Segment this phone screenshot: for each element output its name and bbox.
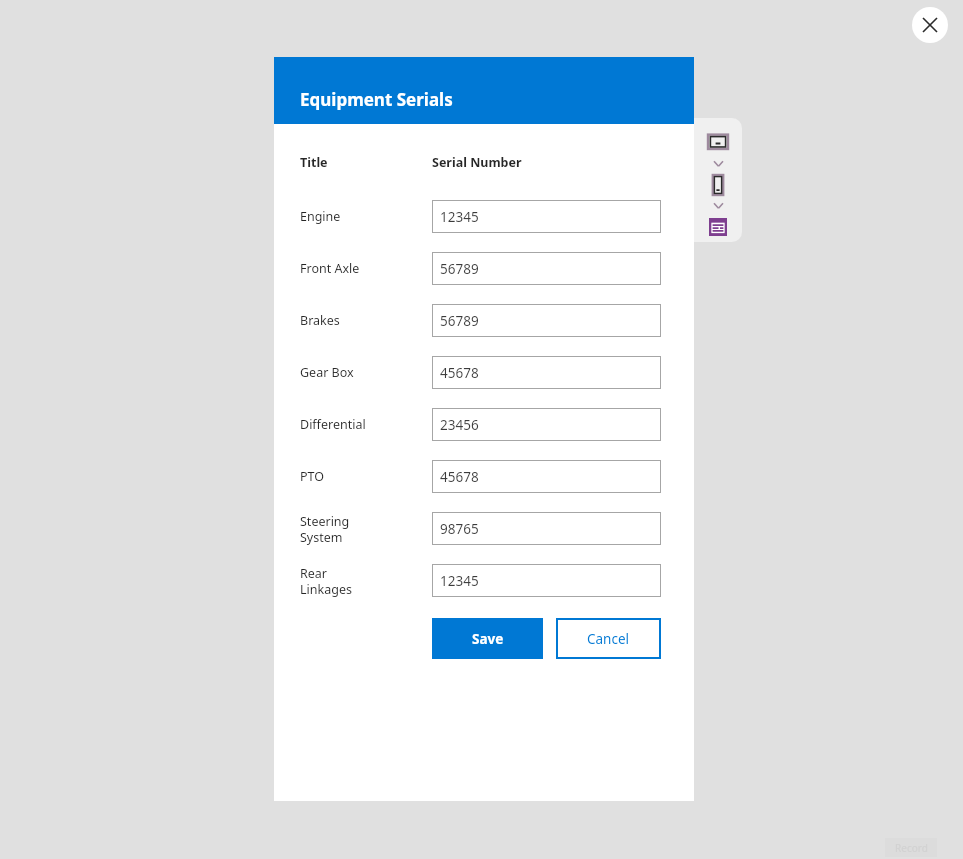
staticText: Gear Box [300, 364, 354, 381]
button[interactable]: 56789 [432, 252, 661, 285]
staticText: Engine [300, 208, 341, 225]
staticText: Differential [300, 416, 366, 433]
staticText: Rear Linkages [300, 565, 352, 597]
button[interactable]: Cancel [556, 618, 661, 659]
staticText: Record [895, 841, 928, 855]
button[interactable]: 12345 [432, 564, 661, 597]
button[interactable]: Phone view [705, 172, 731, 198]
staticText: PTO [300, 468, 325, 485]
staticText: Front Axle [300, 260, 360, 277]
button[interactable]: More desktop options [711, 156, 725, 170]
staticText: 12345 [440, 208, 479, 226]
button[interactable]: 56789 [432, 304, 661, 337]
button[interactable]: Desktop view [705, 130, 731, 156]
button[interactable]: 12345 [432, 200, 661, 233]
staticText: Cancel [587, 630, 630, 648]
staticText: 12345 [440, 572, 479, 590]
button[interactable]: 98765 [432, 512, 661, 545]
staticText: 56789 [440, 260, 479, 278]
staticText: 98765 [440, 520, 479, 538]
button[interactable]: More phone options [711, 198, 725, 212]
button[interactable]: Save [432, 618, 543, 659]
button[interactable]: 45678 [432, 356, 661, 389]
staticText: 45678 [440, 364, 479, 382]
button[interactable]: Close [912, 7, 948, 43]
staticText: Equipment Serials [300, 88, 453, 111]
staticText: 45678 [440, 468, 479, 486]
button[interactable]: Table layout [705, 214, 731, 240]
button[interactable]: 45678 [432, 460, 661, 493]
staticText: Serial Number [432, 154, 522, 171]
staticText: Title [300, 154, 328, 171]
staticText: Save [472, 630, 504, 648]
staticText: 56789 [440, 312, 479, 330]
staticText: Brakes [300, 312, 340, 329]
staticText: Steering System [300, 513, 350, 545]
button[interactable]: 23456 [432, 408, 661, 441]
staticText: 23456 [440, 416, 479, 434]
